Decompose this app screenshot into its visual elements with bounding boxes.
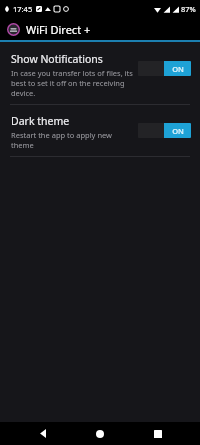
staticText: ON: [172, 64, 184, 74]
button[interactable]: Toggle setting: [138, 123, 191, 138]
button[interactable]: Back: [28, 422, 58, 445]
button[interactable]: Dark theme: [0, 105, 200, 156]
button[interactable]: Toggle setting: [138, 61, 191, 76]
staticText: Show Notifications: [11, 52, 103, 66]
staticText: 87%: [181, 4, 196, 14]
staticText: WiFi Direct +: [26, 22, 91, 37]
staticText: In case you transfer lots of files, its: [11, 68, 133, 78]
staticText: Dark theme: [11, 114, 70, 128]
staticText: 17:45: [13, 4, 33, 14]
staticText: device.: [11, 88, 36, 98]
button[interactable]: Show Notifications: [0, 42, 200, 104]
staticText: best to set it off on the receiving: [11, 78, 125, 88]
staticText: ON: [172, 126, 184, 136]
button[interactable]: Home: [85, 422, 115, 445]
button[interactable]: Recent apps: [143, 422, 173, 445]
staticText: Restart the app to apply new: [11, 130, 113, 140]
staticText: theme: [11, 140, 34, 150]
